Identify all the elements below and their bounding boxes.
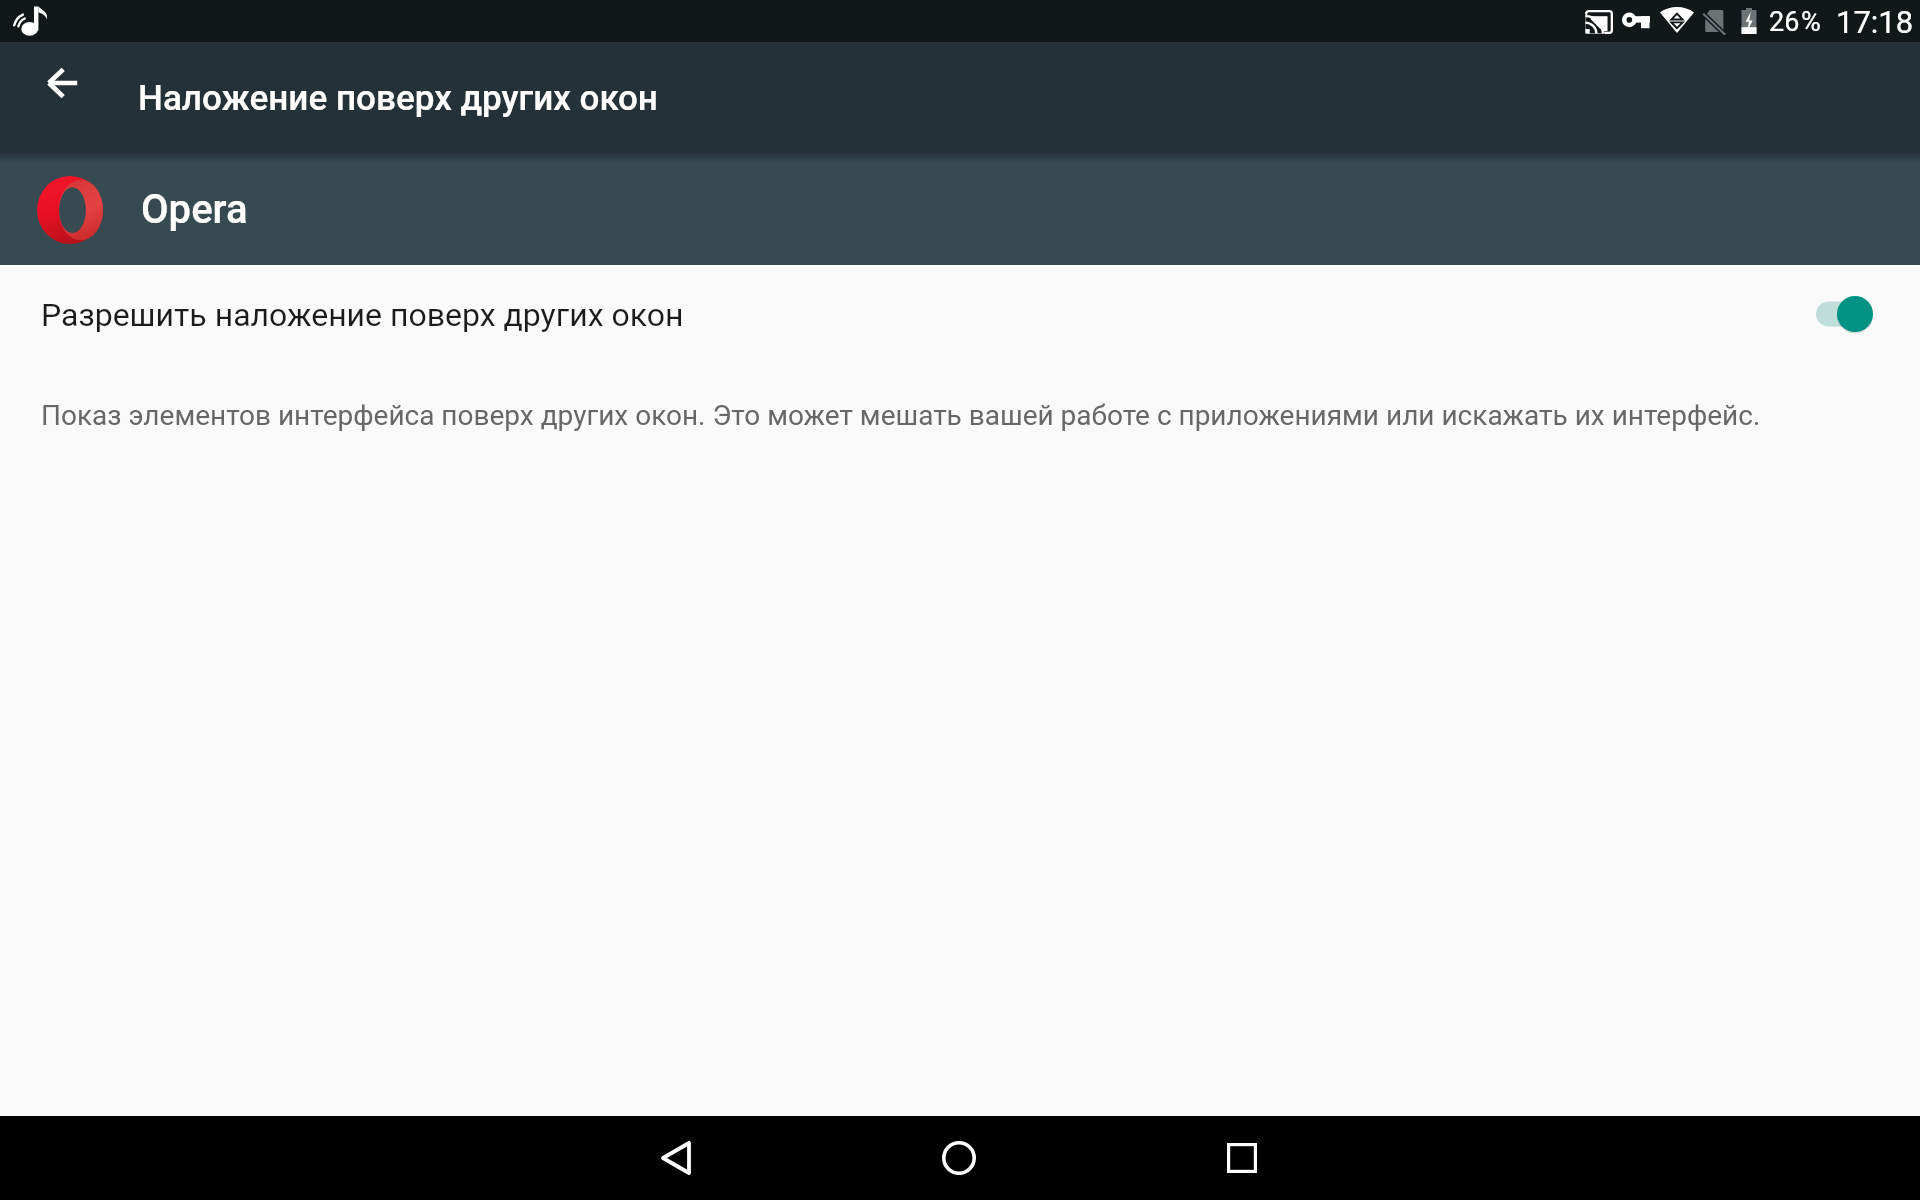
staticText: Показ элементов интерфейса поверх других… bbox=[41, 399, 1761, 432]
staticText: Наложение поверх других окон bbox=[138, 78, 658, 119]
button[interactable]: Back bbox=[26, 60, 100, 134]
staticText: Разрешить наложение поверх других окон bbox=[41, 296, 684, 334]
staticText: 26 bbox=[1769, 6, 1800, 38]
button[interactable]: Back bbox=[634, 1116, 718, 1200]
button[interactable]: Разрешить наложение поверх других окон bbox=[0, 264, 1920, 366]
staticText: 17:18 bbox=[1836, 4, 1914, 40]
staticText: Opera bbox=[141, 186, 248, 233]
button[interactable]: Home bbox=[917, 1116, 1001, 1200]
button[interactable]: Recent apps bbox=[1200, 1116, 1284, 1200]
button[interactable]: Allow display over other apps toggle bbox=[1810, 289, 1880, 339]
staticText: % bbox=[1801, 6, 1821, 38]
